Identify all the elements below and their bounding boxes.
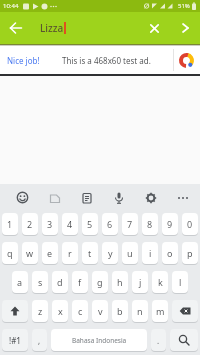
button[interactable]: 1	[2, 213, 18, 235]
button[interactable]: .	[151, 329, 166, 351]
staticText: 7	[127, 218, 133, 230]
button[interactable]	[2, 300, 28, 322]
button[interactable]: Nice job!	[0, 46, 200, 74]
staticText: n	[137, 305, 143, 317]
button[interactable]	[102, 184, 134, 210]
staticText: 4	[67, 218, 73, 230]
staticText: a	[17, 276, 23, 288]
button[interactable]: Bahasa Indonesia	[51, 329, 147, 351]
button[interactable]: m	[152, 300, 168, 322]
staticText: s	[38, 276, 43, 288]
button[interactable]: z	[32, 300, 48, 322]
button[interactable]: 3	[42, 213, 58, 235]
button[interactable]: j	[132, 271, 148, 293]
button[interactable]	[134, 184, 166, 210]
staticText: f	[78, 276, 82, 288]
button[interactable]: c	[72, 300, 88, 322]
button[interactable]: g	[92, 271, 108, 293]
button[interactable]: 7	[122, 213, 138, 235]
staticText: c	[78, 305, 83, 317]
button[interactable]: k	[152, 271, 168, 293]
button[interactable]	[174, 17, 196, 39]
button[interactable]	[38, 184, 70, 210]
staticText: Nice job!	[7, 55, 40, 66]
button[interactable]: b	[112, 300, 128, 322]
staticText: 51%	[178, 2, 190, 10]
staticText: u	[127, 247, 133, 259]
button[interactable]: t	[82, 242, 98, 264]
button[interactable]: d	[52, 271, 68, 293]
button[interactable]: a	[12, 271, 28, 293]
button[interactable]: 6	[102, 213, 118, 235]
button[interactable]: y	[102, 242, 118, 264]
staticText: z	[38, 305, 43, 317]
button[interactable]: 8	[142, 213, 158, 235]
staticText: w	[26, 247, 34, 259]
button[interactable]: h	[112, 271, 128, 293]
staticText: l	[179, 276, 182, 288]
staticText: k	[158, 276, 163, 288]
button[interactable]: 2	[22, 213, 38, 235]
button[interactable]: 4	[62, 213, 78, 235]
button[interactable]	[170, 329, 198, 351]
staticText: q	[7, 247, 13, 259]
button[interactable]: ,	[32, 329, 47, 351]
staticText: y	[108, 247, 113, 259]
button[interactable]: p	[182, 242, 198, 264]
staticText: g	[97, 276, 103, 288]
button[interactable]	[6, 184, 38, 210]
button[interactable]: n	[132, 300, 148, 322]
button[interactable]: r	[62, 242, 78, 264]
staticText: 1	[7, 218, 13, 230]
staticText: b	[117, 305, 123, 317]
staticText: Bahasa Indonesia	[72, 336, 127, 345]
staticText: h	[117, 276, 123, 288]
button[interactable]: i	[142, 242, 158, 264]
staticText: ,	[38, 335, 41, 346]
staticText: p	[187, 247, 193, 259]
staticText: Lizza	[40, 21, 64, 35]
staticText: j	[139, 276, 142, 288]
staticText: t	[88, 247, 92, 259]
staticText: o	[167, 247, 173, 259]
button[interactable]: v	[92, 300, 108, 322]
button[interactable]: !#1	[2, 329, 28, 351]
staticText: !#1	[9, 335, 21, 346]
button[interactable]	[140, 14, 168, 42]
staticText: m	[156, 305, 165, 317]
staticText: e	[47, 247, 53, 259]
staticText: 2	[27, 218, 33, 230]
button[interactable]	[70, 184, 102, 210]
staticText: v	[98, 305, 103, 317]
staticText: 6	[107, 218, 113, 230]
staticText: 5	[87, 218, 93, 230]
button[interactable]: f	[72, 271, 88, 293]
button[interactable]	[0, 12, 32, 44]
staticText: 10:44	[3, 2, 19, 10]
button[interactable]: x	[52, 300, 68, 322]
button[interactable]: 5	[82, 213, 98, 235]
staticText: x	[58, 305, 63, 317]
button[interactable]: u	[122, 242, 138, 264]
button[interactable]	[172, 300, 198, 322]
staticText: 9	[167, 218, 173, 230]
button[interactable]: e	[42, 242, 58, 264]
button[interactable]: o	[162, 242, 178, 264]
button[interactable]	[166, 184, 198, 210]
staticText: 3	[47, 218, 53, 230]
button[interactable]: w	[22, 242, 38, 264]
button[interactable]: q	[2, 242, 18, 264]
button[interactable]: 9	[162, 213, 178, 235]
button[interactable]: 0	[182, 213, 198, 235]
staticText: 0	[187, 218, 193, 230]
staticText: 8	[147, 218, 153, 230]
staticText: r	[68, 247, 72, 259]
staticText: d	[57, 276, 63, 288]
staticText: i	[149, 247, 152, 259]
staticText: .	[157, 335, 160, 346]
staticText: This is a 468x60 test ad.	[62, 55, 151, 66]
button[interactable]: l	[172, 271, 188, 293]
button[interactable]: s	[32, 271, 48, 293]
